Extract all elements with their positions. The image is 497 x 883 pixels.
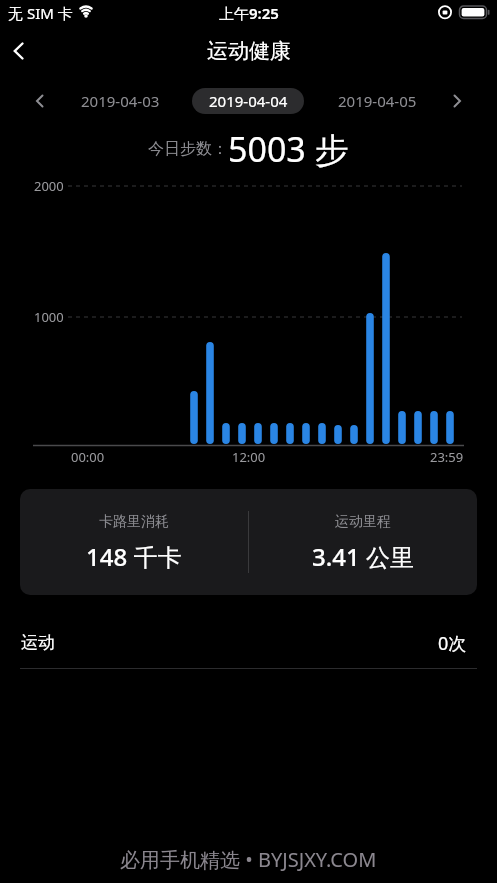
staticText: 2019-04-03 [81, 91, 160, 111]
button[interactable]: 2019-04-03 [60, 88, 180, 114]
staticText: 5003 步 [228, 126, 349, 172]
button[interactable] [2, 38, 38, 66]
staticText: 必用手机精选 • BYJSJXY.COM [120, 846, 377, 873]
staticText: 运动健康 [207, 38, 291, 64]
staticText: 上午9:25 [219, 3, 279, 23]
staticText: 23:59 [430, 448, 464, 464]
staticText: 00:00 [71, 448, 105, 464]
staticText: 1000 [34, 308, 64, 324]
button[interactable]: 运动 [0, 618, 497, 668]
staticText: 0次 [438, 631, 467, 656]
staticText: 运动里程 [335, 513, 391, 531]
staticText: 148 千卡 [86, 540, 182, 573]
staticText: 3.41 公里 [312, 540, 414, 573]
button[interactable] [445, 89, 469, 113]
staticText: 2000 [34, 177, 64, 193]
staticText: 2019-04-05 [338, 91, 417, 111]
button[interactable]: 2019-04-05 [317, 88, 437, 114]
staticText: 运动 [21, 632, 55, 653]
button[interactable]: 2019-04-04 [192, 88, 304, 114]
staticText: 无 SIM 卡 [8, 3, 73, 23]
staticText: 今日步数： [148, 139, 228, 159]
staticText: 2019-04-04 [209, 91, 288, 111]
button[interactable] [28, 89, 52, 113]
staticText: 12:00 [232, 448, 266, 464]
staticText: 卡路里消耗 [99, 513, 169, 531]
button[interactable]: 卡路里消耗 [20, 489, 477, 595]
